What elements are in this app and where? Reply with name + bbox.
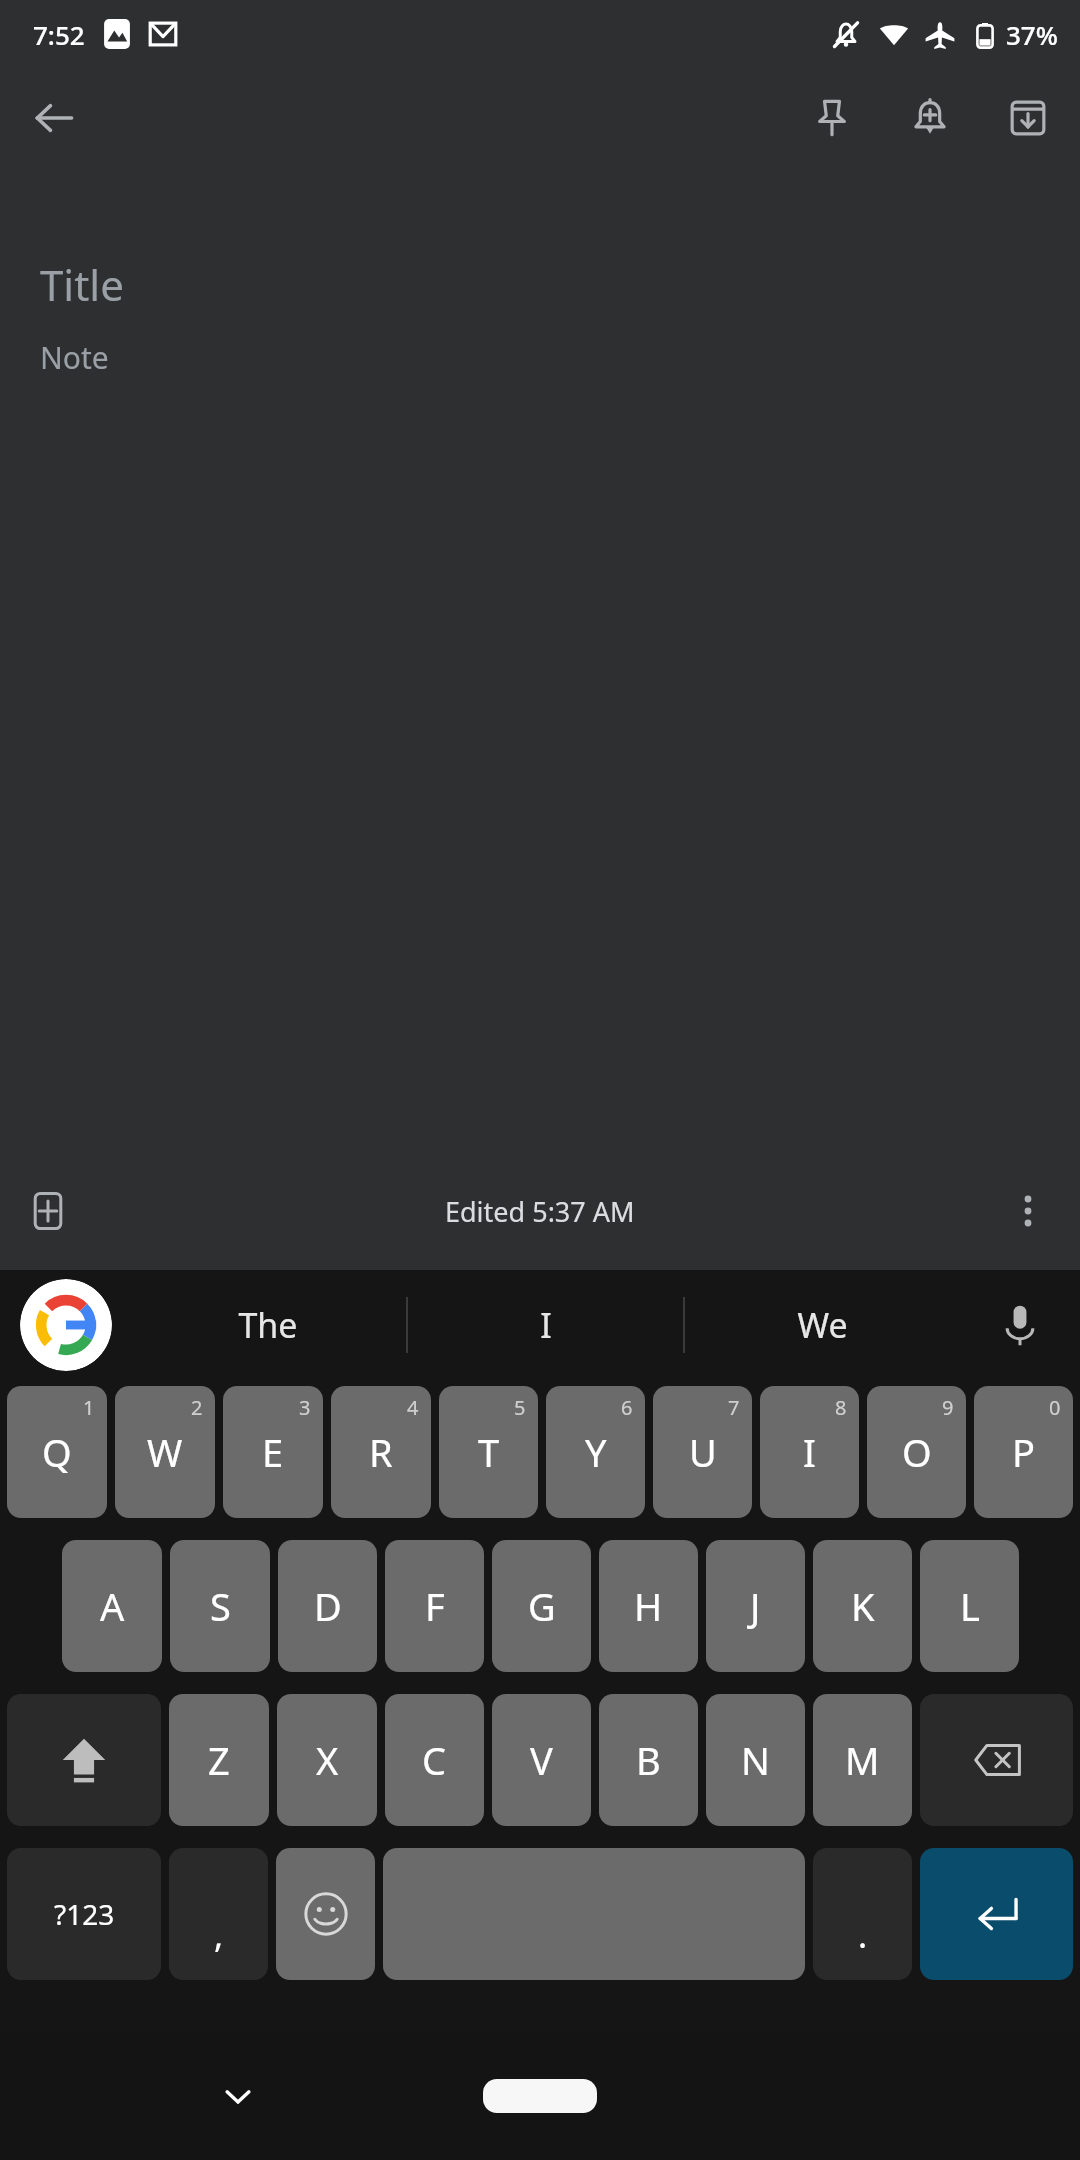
button[interactable]: D xyxy=(278,1540,377,1672)
staticText: P xyxy=(1012,1426,1035,1478)
staticText: 2 xyxy=(191,1394,203,1421)
staticText: T xyxy=(478,1426,500,1478)
button[interactable]: M xyxy=(813,1694,912,1826)
button[interactable]: Add reminder xyxy=(894,82,966,154)
staticText: . xyxy=(858,1912,868,1958)
staticText: 1 xyxy=(83,1394,95,1421)
button[interactable]: Back xyxy=(18,82,90,154)
staticText: I xyxy=(803,1426,816,1478)
button[interactable]: S xyxy=(170,1540,270,1672)
staticText: D xyxy=(314,1580,342,1632)
button[interactable]: Pin note xyxy=(796,82,868,154)
button[interactable]: The xyxy=(130,1270,406,1380)
staticText: O xyxy=(902,1426,932,1478)
staticText: L xyxy=(960,1580,980,1632)
staticText: M xyxy=(845,1734,880,1786)
staticText: F xyxy=(425,1580,445,1632)
staticText: W xyxy=(147,1426,183,1478)
staticText: 8 xyxy=(835,1394,847,1421)
button[interactable]: Voice input xyxy=(980,1285,1060,1365)
staticText: Z xyxy=(208,1734,230,1786)
staticText: The xyxy=(238,1302,298,1348)
button[interactable]: H xyxy=(599,1540,698,1672)
staticText: We xyxy=(797,1302,848,1348)
button[interactable]: Hide keyboard xyxy=(196,2054,280,2138)
staticText: 4 xyxy=(407,1394,419,1421)
button[interactable]: Z xyxy=(169,1694,269,1826)
button[interactable]: I xyxy=(408,1270,683,1380)
staticText: K xyxy=(851,1580,875,1632)
staticText: 7:52 xyxy=(33,17,85,52)
staticText: Edited 5:37 AM xyxy=(445,1193,635,1230)
button[interactable]: We xyxy=(685,1270,960,1380)
button[interactable]: C xyxy=(385,1694,484,1826)
button[interactable]: L xyxy=(920,1540,1019,1672)
staticText: 37% xyxy=(1006,17,1058,52)
button[interactable]: W xyxy=(115,1386,215,1518)
button[interactable]: N xyxy=(706,1694,805,1826)
staticText: V xyxy=(530,1734,553,1786)
button[interactable]: Title xyxy=(0,256,1080,313)
button[interactable] xyxy=(383,1848,805,1980)
button[interactable]: K xyxy=(813,1540,912,1672)
button[interactable]: Add xyxy=(12,1175,84,1247)
staticText: E xyxy=(262,1426,284,1478)
button[interactable]: . xyxy=(813,1848,912,1980)
button[interactable]: Enter xyxy=(920,1848,1073,1980)
button[interactable]: A xyxy=(62,1540,162,1672)
button[interactable]: Home xyxy=(483,2079,597,2113)
button[interactable]: B xyxy=(599,1694,698,1826)
staticText: Title xyxy=(40,256,124,313)
button[interactable]: T xyxy=(439,1386,538,1518)
button[interactable]: Archive xyxy=(992,82,1064,154)
staticText: R xyxy=(369,1426,393,1478)
button[interactable]: More options xyxy=(992,1175,1064,1247)
staticText: B xyxy=(636,1734,661,1786)
button[interactable]: I xyxy=(760,1386,859,1518)
button[interactable]: ?123 xyxy=(7,1848,161,1980)
staticText: 0 xyxy=(1049,1394,1061,1421)
button[interactable]: J xyxy=(706,1540,805,1672)
staticText: S xyxy=(210,1580,231,1632)
staticText: 3 xyxy=(299,1394,311,1421)
staticText: H xyxy=(634,1580,663,1632)
button[interactable]: F xyxy=(385,1540,484,1672)
button[interactable]: O xyxy=(867,1386,966,1518)
staticText: G xyxy=(528,1580,556,1632)
staticText: A xyxy=(100,1580,125,1632)
button[interactable]: P xyxy=(974,1386,1073,1518)
button[interactable]: U xyxy=(653,1386,752,1518)
staticText: Y xyxy=(585,1426,607,1478)
button[interactable]: V xyxy=(492,1694,591,1826)
button[interactable]: R xyxy=(331,1386,431,1518)
button[interactable]: X xyxy=(277,1694,377,1826)
staticText: 5 xyxy=(514,1394,526,1421)
staticText: 9 xyxy=(942,1394,954,1421)
staticText: Q xyxy=(42,1426,72,1478)
staticText: X xyxy=(316,1734,339,1786)
staticText: J xyxy=(750,1580,761,1632)
button[interactable]: Shift xyxy=(7,1694,161,1826)
button[interactable]: E xyxy=(223,1386,323,1518)
staticText: N xyxy=(741,1734,770,1786)
button[interactable]: Q xyxy=(7,1386,107,1518)
button[interactable]: Backspace xyxy=(920,1694,1073,1826)
staticText: , xyxy=(214,1912,224,1958)
staticText: 7 xyxy=(728,1394,740,1421)
button[interactable]: G xyxy=(492,1540,591,1672)
staticText: Note xyxy=(40,337,109,378)
button[interactable]: Y xyxy=(546,1386,645,1518)
staticText: I xyxy=(540,1302,552,1348)
button[interactable]: Emoji xyxy=(276,1848,375,1980)
button[interactable]: Google xyxy=(20,1279,112,1371)
staticText: ?123 xyxy=(54,1895,115,1933)
staticText: U xyxy=(689,1426,717,1478)
staticText: 6 xyxy=(621,1394,633,1421)
staticText: C xyxy=(422,1734,447,1786)
button[interactable]: , xyxy=(169,1848,268,1980)
